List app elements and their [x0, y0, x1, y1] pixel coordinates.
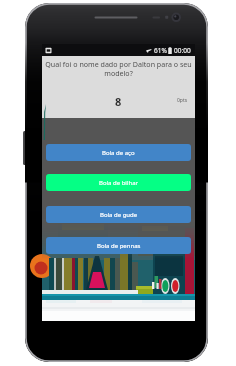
staticText: Bola de bilhar: [99, 179, 138, 187]
staticText: 8: [115, 94, 122, 109]
button[interactable]: Bola de bilhar: [46, 174, 191, 191]
staticText: 00:00: [174, 46, 191, 55]
staticText: Bola de aço: [102, 149, 135, 157]
staticText: Bola de gude: [100, 211, 138, 219]
staticText: 61%: [154, 46, 167, 55]
staticText: Qual foi o nome dado por Dalton para o s…: [45, 59, 192, 78]
button[interactable]: Bola de pennas: [46, 237, 191, 254]
staticText: Bola de pennas: [97, 242, 141, 250]
button[interactable]: Bola de gude: [46, 206, 191, 223]
button[interactable]: Bola de aço: [46, 144, 191, 161]
staticText: 0pts: [177, 97, 188, 104]
